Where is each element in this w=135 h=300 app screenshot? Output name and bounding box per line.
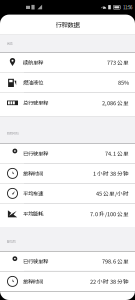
button[interactable]: 总行驶里程 <box>0 93 135 116</box>
button[interactable]: 续航里程 <box>0 53 135 73</box>
button[interactable]: 平均车速 <box>0 184 135 204</box>
staticText: 11:56 <box>123 4 132 10</box>
staticText: 行程数据 <box>55 20 79 29</box>
staticText: 22 小时 38 分钟 <box>90 277 129 285</box>
staticText: 平均车速 <box>23 189 43 197</box>
staticText: 已行驶里程 <box>23 149 48 157</box>
staticText: 74.1 公里 <box>105 149 129 157</box>
staticText: 1 小时 38 分钟 <box>93 169 129 177</box>
staticText: 45 公里/小时 <box>96 189 129 197</box>
staticText: 燃油液位 <box>23 78 43 86</box>
staticText: 773 公里 <box>107 58 129 66</box>
staticText: 续航里程 <box>23 58 43 66</box>
button[interactable]: 燃油液位 <box>0 73 135 93</box>
staticText: 798.6 公里 <box>102 257 129 265</box>
staticText: 平均能耗 <box>23 210 43 218</box>
staticText: 自启动后 <box>6 130 18 135</box>
staticText: 旅程时间 <box>23 277 43 285</box>
button[interactable]: 已行驶里程 <box>0 251 135 271</box>
button[interactable]: 平均能耗 <box>0 204 135 227</box>
staticText: 旅程时间 <box>23 169 43 177</box>
staticText: 已行驶里程 <box>23 257 48 265</box>
button[interactable]: 旅程时间 <box>0 164 135 184</box>
staticText: 7.0 升/100 公里 <box>90 210 129 218</box>
staticText: 总行驶里程 <box>23 99 48 107</box>
button[interactable]: 已行驶里程 <box>0 144 135 164</box>
staticText: 复位后 <box>6 239 15 244</box>
staticText: 85% <box>118 78 129 86</box>
staticText: 2,086 公里 <box>102 99 129 107</box>
button[interactable]: 旅程时间 <box>0 271 135 291</box>
staticText: 状态 <box>6 41 12 46</box>
